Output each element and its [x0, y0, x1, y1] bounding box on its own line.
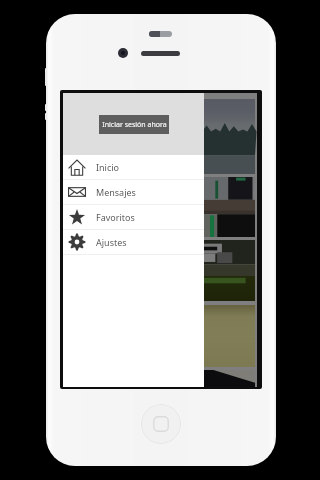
staticText: Iniciar sesión ahora: [102, 120, 167, 130]
button[interactable]: Mensajes: [63, 180, 204, 205]
button[interactable]: Favoritos: [63, 205, 204, 230]
staticText: Mensajes: [96, 186, 136, 198]
other: Mensajes: [68, 183, 86, 201]
button[interactable]: Home: [141, 404, 181, 444]
button[interactable]: Inicio: [63, 155, 204, 180]
staticText: Ajustes: [96, 236, 127, 248]
other: Favoritos: [68, 208, 86, 226]
other: Inicio: [68, 158, 86, 176]
button[interactable]: Iniciar sesión ahora: [99, 115, 169, 134]
other: Ajustes: [68, 233, 86, 251]
staticText: Favoritos: [96, 211, 135, 223]
button[interactable]: Ajustes: [63, 230, 204, 255]
staticText: Inicio: [96, 161, 120, 173]
